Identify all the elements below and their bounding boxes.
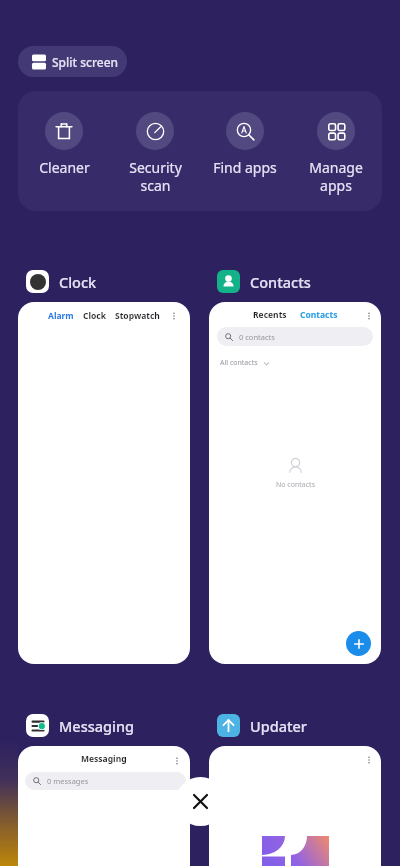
staticText: Security scan bbox=[129, 158, 182, 195]
button[interactable]: Updater bbox=[209, 713, 313, 738]
staticText: Contacts bbox=[300, 309, 338, 321]
button[interactable]: More options bbox=[364, 311, 374, 321]
button[interactable]: Cleaner bbox=[19, 91, 109, 177]
staticText: 0 contacts bbox=[239, 332, 275, 342]
button[interactable]: Messaging bbox=[18, 713, 141, 738]
button[interactable]: Messaging bbox=[18, 746, 190, 866]
staticText: Recents bbox=[253, 309, 287, 321]
button[interactable]: More options bbox=[172, 756, 182, 766]
staticText: Cleaner bbox=[39, 158, 90, 177]
button[interactable]: Contacts bbox=[209, 269, 317, 294]
staticText: Messaging bbox=[81, 753, 127, 765]
button[interactable]: Manage apps bbox=[291, 91, 381, 195]
staticText: Stopwatch bbox=[115, 310, 160, 322]
button[interactable]: Add contact bbox=[346, 631, 371, 656]
button[interactable]: More options bbox=[209, 746, 381, 866]
button[interactable]: 0 contacts bbox=[217, 327, 373, 346]
staticText: Updater bbox=[250, 716, 307, 736]
button[interactable]: Split screen bbox=[18, 46, 127, 77]
button[interactable]: Find apps bbox=[200, 91, 290, 177]
staticText: Find apps bbox=[213, 158, 277, 177]
button[interactable]: More options bbox=[364, 755, 374, 765]
button[interactable]: 0 messages bbox=[25, 772, 186, 790]
staticText: Clock bbox=[83, 310, 106, 322]
staticText: All contacts bbox=[220, 358, 258, 368]
button[interactable]: Security scan bbox=[110, 91, 200, 195]
staticText: Contacts bbox=[250, 272, 311, 292]
button[interactable]: More options bbox=[169, 311, 179, 321]
staticText: Split screen bbox=[52, 54, 119, 70]
staticText: Manage apps bbox=[309, 158, 363, 195]
staticText: Alarm bbox=[48, 310, 74, 322]
button[interactable]: Recents bbox=[209, 302, 381, 664]
button[interactable]: Close all bbox=[176, 777, 225, 826]
staticText: No contacts bbox=[276, 480, 315, 490]
button[interactable]: Clock bbox=[18, 269, 103, 294]
staticText: Messaging bbox=[59, 716, 135, 736]
button[interactable]: Alarm bbox=[18, 302, 190, 664]
staticText: 0 messages bbox=[47, 776, 89, 786]
staticText: Clock bbox=[59, 272, 97, 292]
